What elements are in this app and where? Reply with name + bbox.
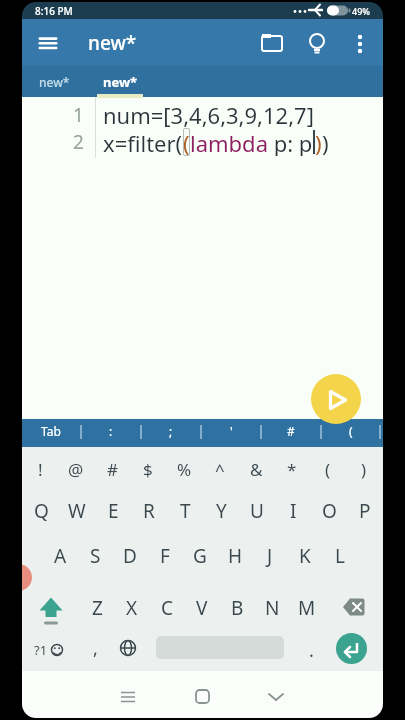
button[interactable] bbox=[256, 680, 296, 714]
button[interactable] bbox=[338, 590, 378, 626]
button[interactable]: Q bbox=[24, 492, 58, 530]
staticText: % bbox=[177, 458, 192, 481]
button[interactable]: B bbox=[220, 589, 254, 627]
staticText: G bbox=[193, 543, 207, 569]
button[interactable] bbox=[258, 30, 286, 58]
staticText: B bbox=[231, 595, 244, 621]
button[interactable]: $ bbox=[131, 451, 165, 487]
button[interactable]: Z bbox=[80, 589, 114, 627]
staticText: ! bbox=[38, 458, 43, 481]
button[interactable]: I bbox=[276, 492, 310, 530]
staticText: Y bbox=[216, 498, 227, 524]
button[interactable]: ) bbox=[347, 451, 381, 487]
button[interactable] bbox=[34, 590, 68, 626]
button[interactable] bbox=[336, 633, 367, 664]
button[interactable]: H bbox=[218, 537, 252, 575]
staticText: , bbox=[93, 636, 98, 661]
staticText: X bbox=[126, 595, 138, 621]
staticText: ?1 bbox=[34, 641, 48, 659]
staticText: O bbox=[322, 498, 337, 524]
button[interactable]: new* bbox=[26, 66, 82, 97]
button[interactable]: new* bbox=[96, 66, 144, 97]
button[interactable] bbox=[311, 374, 361, 424]
button[interactable]: V bbox=[185, 589, 219, 627]
staticText: M bbox=[298, 595, 316, 621]
staticText: A bbox=[54, 543, 67, 569]
button[interactable]: M bbox=[290, 589, 324, 627]
button[interactable]: O bbox=[312, 492, 346, 530]
button[interactable]: P bbox=[348, 492, 382, 530]
staticText: # bbox=[107, 458, 118, 481]
staticText: Tab bbox=[41, 423, 61, 439]
staticText: ( bbox=[325, 458, 331, 481]
staticText: F bbox=[160, 543, 170, 569]
button[interactable]: Tab bbox=[23, 417, 79, 445]
button[interactable]: R bbox=[132, 492, 166, 530]
staticText: Q bbox=[34, 498, 49, 524]
staticText: 49% bbox=[352, 5, 370, 17]
button[interactable]: U bbox=[240, 492, 274, 530]
staticText: & bbox=[250, 458, 263, 481]
button[interactable] bbox=[114, 634, 142, 662]
button[interactable]: & bbox=[239, 451, 273, 487]
button[interactable]: L bbox=[323, 537, 357, 575]
staticText: Z bbox=[92, 595, 103, 621]
button[interactable] bbox=[108, 680, 148, 714]
staticText: W bbox=[68, 498, 86, 524]
button[interactable]: ' bbox=[203, 417, 259, 445]
staticText: : bbox=[109, 423, 113, 439]
staticText: new* bbox=[88, 30, 137, 56]
button[interactable]: J bbox=[253, 537, 287, 575]
staticText: S bbox=[90, 543, 101, 569]
staticText: H bbox=[228, 543, 243, 569]
button[interactable]: ; bbox=[143, 417, 199, 445]
staticText: new* bbox=[103, 73, 138, 91]
button[interactable]: * bbox=[275, 451, 309, 487]
staticText: E bbox=[108, 498, 119, 524]
button[interactable] bbox=[348, 30, 372, 58]
staticText: L bbox=[335, 543, 345, 569]
button[interactable]: ( bbox=[323, 417, 379, 445]
button[interactable]: # bbox=[95, 451, 129, 487]
button[interactable]: ( bbox=[311, 451, 345, 487]
staticText: num=[3,4,6,3,9,12,7] bbox=[103, 100, 314, 130]
button[interactable] bbox=[182, 680, 222, 714]
button[interactable]: . bbox=[298, 633, 324, 667]
button[interactable]: C bbox=[150, 589, 184, 627]
button[interactable]: T bbox=[168, 492, 202, 530]
staticText: 2 bbox=[73, 129, 84, 155]
button[interactable]: F bbox=[148, 537, 182, 575]
button[interactable]: K bbox=[288, 537, 322, 575]
button[interactable]: G bbox=[183, 537, 217, 575]
button[interactable]: D bbox=[113, 537, 147, 575]
button[interactable]: W bbox=[60, 492, 94, 530]
button[interactable]: E bbox=[96, 492, 130, 530]
staticText: ; bbox=[169, 423, 173, 439]
staticText: J bbox=[267, 543, 273, 569]
staticText: ) bbox=[361, 458, 367, 481]
button[interactable]: : bbox=[83, 417, 139, 445]
button[interactable]: N bbox=[255, 589, 289, 627]
button[interactable]: S bbox=[78, 537, 112, 575]
button[interactable]: % bbox=[167, 451, 201, 487]
button[interactable]: X bbox=[115, 589, 149, 627]
staticText: U bbox=[250, 498, 264, 524]
button[interactable] bbox=[303, 30, 331, 58]
button[interactable]: @ bbox=[59, 451, 93, 487]
button[interactable]: Y bbox=[204, 492, 238, 530]
staticText: V bbox=[196, 595, 208, 621]
staticText: new* bbox=[39, 74, 70, 90]
staticText: . bbox=[309, 638, 314, 663]
staticText: ) bbox=[322, 128, 329, 156]
staticText: ( bbox=[349, 423, 353, 439]
button[interactable]: A bbox=[43, 537, 77, 575]
staticText: @ bbox=[68, 458, 84, 481]
button[interactable] bbox=[36, 31, 64, 57]
button[interactable]: , bbox=[82, 631, 108, 665]
button[interactable]: ! bbox=[23, 451, 57, 487]
staticText: D bbox=[123, 543, 137, 569]
button[interactable]: ^ bbox=[203, 451, 237, 487]
staticText: * bbox=[287, 458, 297, 481]
button[interactable]: # bbox=[263, 417, 319, 445]
